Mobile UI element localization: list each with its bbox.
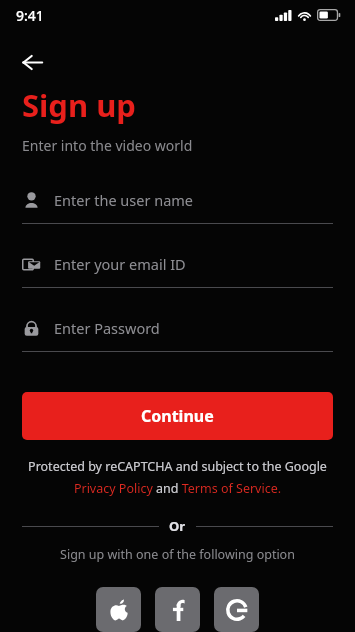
button[interactable]: Continue	[22, 392, 333, 440]
staticText: Enter the user name	[54, 190, 194, 210]
button[interactable]: Sign up with Apple	[96, 587, 141, 632]
button[interactable]: Sign up with Google	[214, 587, 259, 632]
staticText: Protected by reCAPTCHA and subject to th…	[14, 458, 341, 475]
staticText: Or	[169, 517, 186, 535]
button[interactable]: Privacy Policy and Terms of Service.	[14, 480, 341, 497]
button[interactable]: Enter your email ID	[22, 251, 333, 288]
staticText: Sign up with one of the following option	[0, 546, 355, 563]
staticText: Enter your email ID	[54, 254, 186, 274]
staticText: Continue	[141, 405, 214, 427]
button[interactable]: Enter Password	[22, 315, 333, 352]
staticText: 9:41	[16, 6, 44, 25]
staticText: Enter into the video world	[22, 136, 193, 155]
button[interactable]: Enter the user name	[22, 187, 333, 224]
button[interactable]: Sign up with Facebook	[155, 587, 200, 632]
button[interactable]: Back	[12, 42, 52, 82]
staticText: Enter Password	[54, 318, 160, 338]
staticText: Sign up	[22, 84, 136, 126]
